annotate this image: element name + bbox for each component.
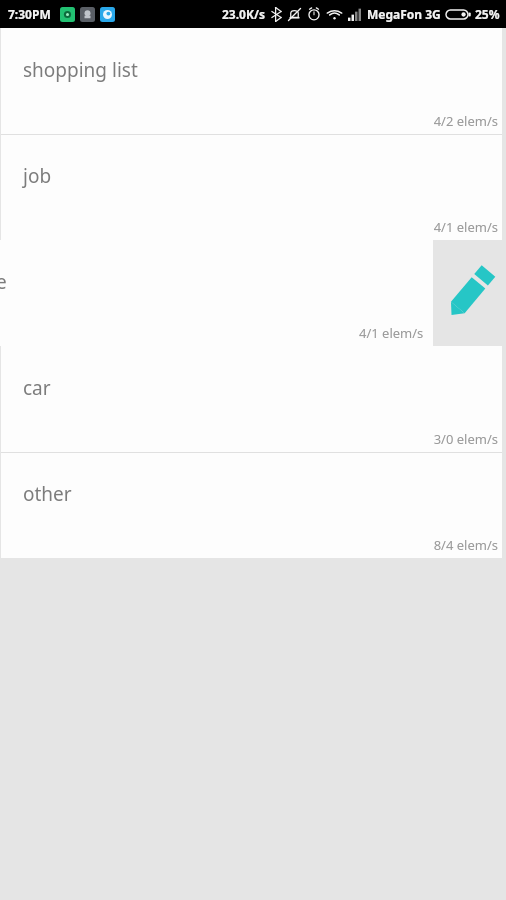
- staticText: MegaFon 3G: [367, 6, 441, 22]
- button[interactable]: job: [0, 134, 506, 240]
- button[interactable]: e: [0, 240, 433, 346]
- staticText: 3/0 elem/s: [433, 430, 498, 448]
- staticText: other: [23, 481, 72, 507]
- staticText: e: [0, 269, 7, 295]
- button[interactable]: car: [0, 346, 506, 452]
- button[interactable]: other: [0, 452, 506, 558]
- button[interactable]: shopping list: [0, 28, 506, 134]
- staticText: 8/4 elem/s: [433, 536, 498, 554]
- staticText: shopping list: [23, 57, 138, 83]
- staticText: 25%: [475, 6, 500, 22]
- staticText: 4/2 elem/s: [433, 112, 498, 130]
- staticText: 23.0K/s: [222, 6, 265, 22]
- staticText: 4/1 elem/s: [433, 218, 498, 236]
- button[interactable]: Edit: [433, 240, 506, 346]
- staticText: 7:30PM: [8, 6, 51, 22]
- staticText: car: [23, 375, 51, 401]
- staticText: 4/1 elem/s: [359, 324, 424, 342]
- staticText: job: [23, 163, 52, 189]
